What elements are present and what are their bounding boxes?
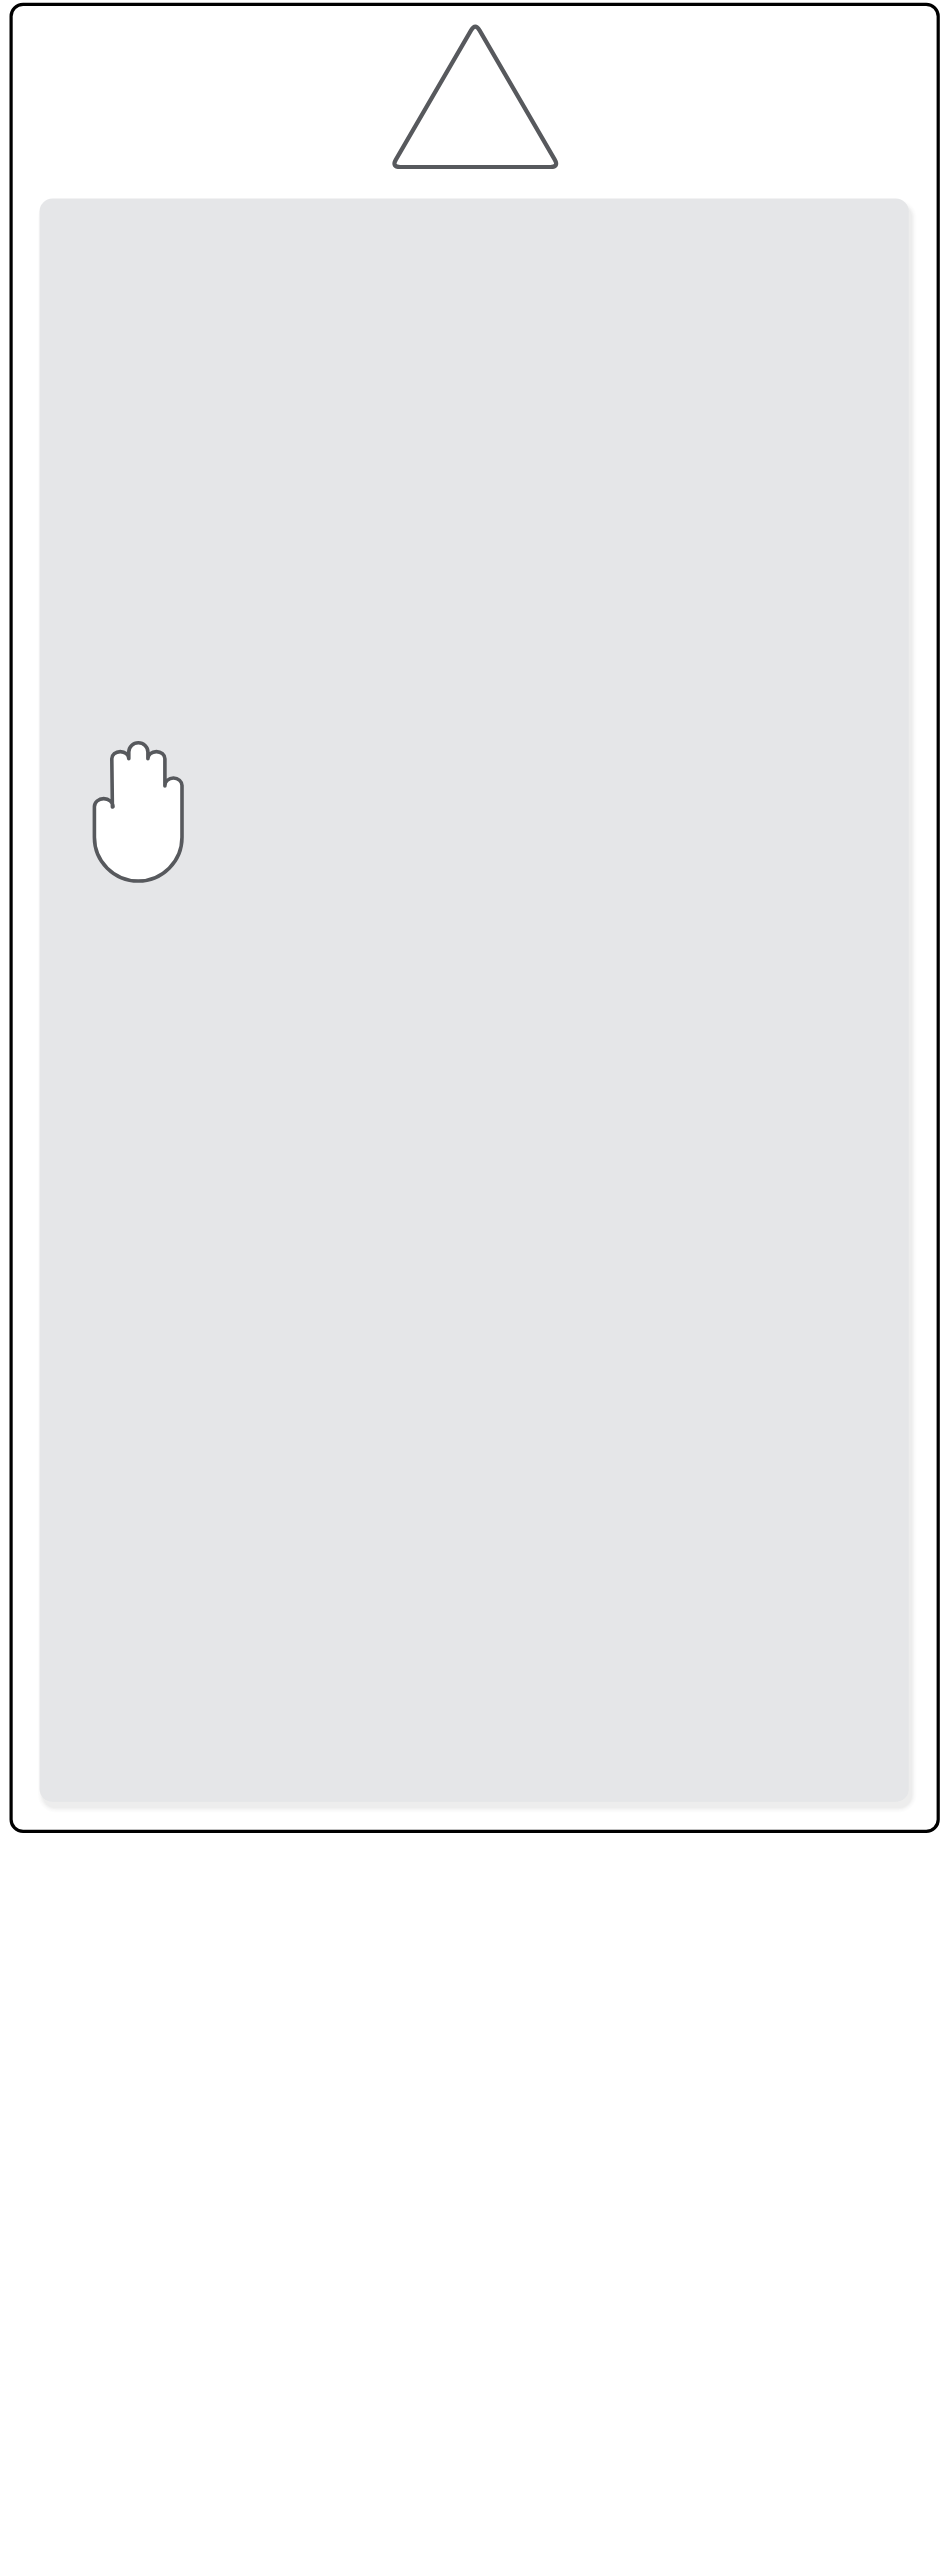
button[interactable]: Pan tool (86, 735, 190, 889)
button[interactable]: Triangle shape (384, 15, 567, 175)
button[interactable]: Canvas surface (40, 199, 909, 1802)
